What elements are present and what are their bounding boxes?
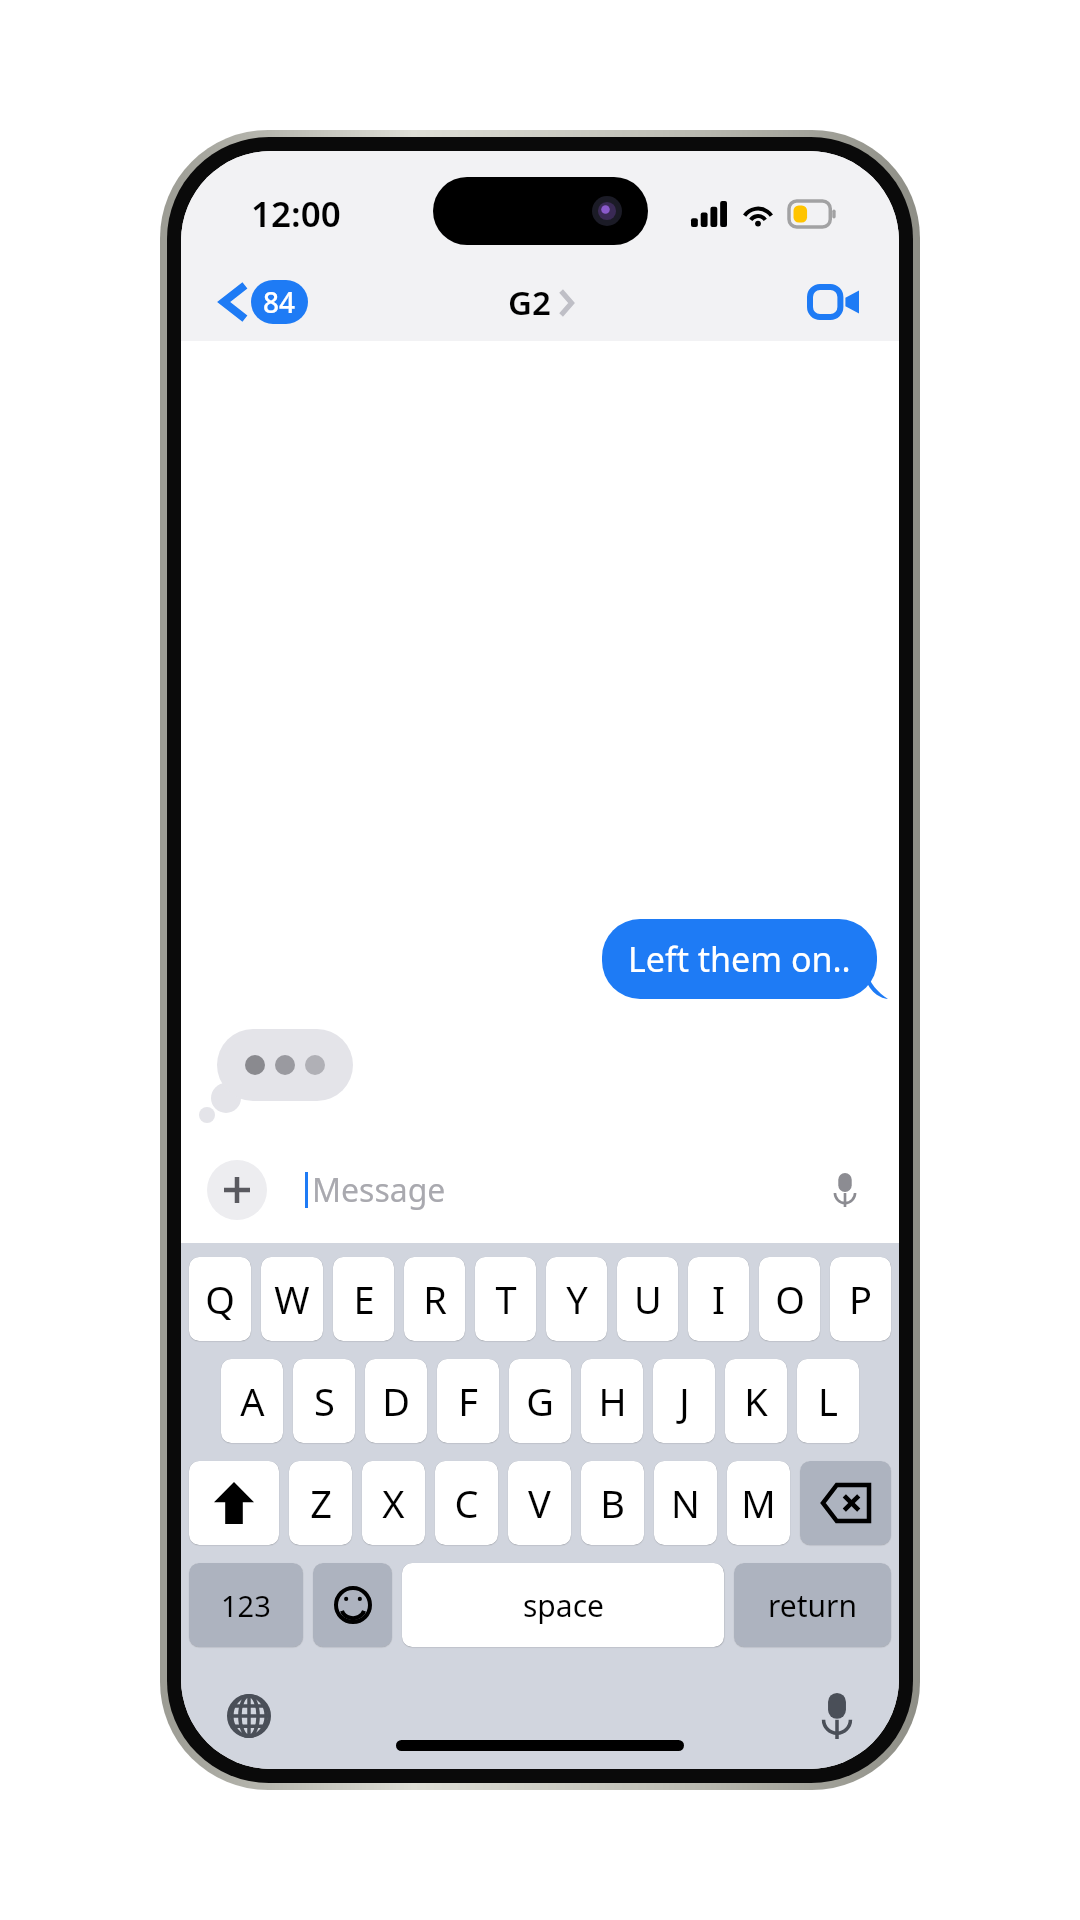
staticText: U — [634, 1273, 662, 1325]
staticText: P — [849, 1273, 872, 1325]
staticText: R — [423, 1273, 447, 1325]
button[interactable]: Z — [289, 1461, 352, 1545]
button[interactable]: FaceTime video call — [801, 278, 865, 326]
staticText: T — [495, 1273, 517, 1325]
button[interactable]: T — [475, 1257, 536, 1341]
button[interactable]: Left them on.. — [602, 919, 877, 999]
staticText: J — [679, 1375, 690, 1427]
button[interactable]: Typing — [217, 1029, 353, 1101]
staticText: return — [768, 1585, 858, 1626]
button[interactable]: space — [402, 1563, 724, 1647]
staticText: H — [598, 1375, 627, 1427]
button[interactable]: K — [725, 1359, 787, 1443]
staticText: Y — [566, 1273, 588, 1325]
button[interactable]: U — [617, 1257, 678, 1341]
button[interactable]: C — [435, 1461, 498, 1545]
staticText: O — [775, 1273, 805, 1325]
staticText: Q — [205, 1273, 235, 1325]
button[interactable]: Y — [546, 1257, 607, 1341]
staticText: C — [454, 1477, 479, 1529]
staticText: Message — [312, 1168, 833, 1212]
staticText: Z — [310, 1477, 332, 1529]
staticText: A — [240, 1375, 265, 1427]
staticText: 84 — [263, 283, 296, 321]
staticText: L — [818, 1375, 838, 1427]
button[interactable]: Shift — [189, 1461, 279, 1545]
button[interactable]: J — [653, 1359, 715, 1443]
button[interactable]: return — [734, 1563, 891, 1647]
button[interactable]: Q — [189, 1257, 251, 1341]
staticText: B — [600, 1477, 625, 1529]
button[interactable]: P — [830, 1257, 891, 1341]
button[interactable]: Change keyboard — [219, 1686, 279, 1746]
staticText: D — [382, 1375, 410, 1427]
button[interactable]: G2 — [508, 280, 573, 325]
button[interactable]: D — [365, 1359, 427, 1443]
button[interactable]: W — [261, 1257, 323, 1341]
button[interactable]: V — [508, 1461, 571, 1545]
staticText: Left them on.. — [628, 936, 851, 982]
button[interactable]: E — [333, 1257, 394, 1341]
staticText: 123 — [221, 1586, 271, 1625]
button[interactable]: H — [581, 1359, 643, 1443]
button[interactable]: Add attachment — [207, 1160, 267, 1220]
staticText: W — [274, 1273, 310, 1325]
button[interactable]: Backspace — [800, 1461, 891, 1545]
button[interactable]: 123 — [189, 1563, 303, 1647]
staticText: M — [741, 1477, 776, 1529]
staticText: V — [528, 1477, 551, 1529]
staticText: I — [712, 1273, 725, 1325]
button[interactable]: Emoji — [313, 1563, 392, 1647]
staticText: N — [671, 1477, 700, 1529]
staticText: 12:00 — [251, 190, 341, 238]
button[interactable]: X — [362, 1461, 425, 1545]
button[interactable]: G — [509, 1359, 571, 1443]
staticText: S — [314, 1375, 335, 1427]
button[interactable]: L — [797, 1359, 859, 1443]
button[interactable]: S — [293, 1359, 355, 1443]
button[interactable]: F — [437, 1359, 499, 1443]
button[interactable]: N — [654, 1461, 717, 1545]
button[interactable]: R — [404, 1257, 465, 1341]
button[interactable]: O — [759, 1257, 820, 1341]
staticText: E — [353, 1273, 375, 1325]
staticText: G2 — [508, 280, 551, 325]
button[interactable]: Back, 84 unread — [215, 274, 314, 330]
button[interactable]: A — [221, 1359, 283, 1443]
button[interactable]: M — [727, 1461, 790, 1545]
button[interactable]: Dictation — [813, 1685, 861, 1747]
staticText: X — [382, 1477, 405, 1529]
button[interactable]: I — [688, 1257, 749, 1341]
staticText: F — [458, 1375, 478, 1427]
button[interactable]: B — [581, 1461, 644, 1545]
staticText: space — [523, 1585, 604, 1626]
staticText: G — [526, 1375, 554, 1427]
staticText: K — [744, 1375, 768, 1427]
button[interactable]: Message — [285, 1159, 873, 1221]
